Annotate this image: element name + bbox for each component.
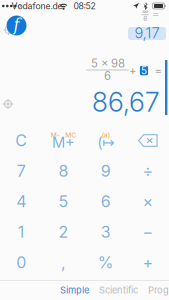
staticText: MC [65,131,76,139]
staticText: Vodafone.de [11,1,62,11]
staticText: 08:52 [73,1,95,11]
button[interactable]: 9 [84,156,127,186]
button[interactable]: 2 [42,217,84,247]
staticText: 6 [143,14,147,22]
staticText: 6 [101,192,111,211]
button[interactable]: + [127,247,169,278]
staticText: 3 [101,222,111,242]
button[interactable]: (a) [84,125,127,156]
button[interactable]: 7 [0,156,42,186]
staticText: 4 [16,192,26,211]
button[interactable]: % [84,247,127,278]
button[interactable]: Functions [6,15,26,35]
staticText: + [129,64,136,77]
staticText: = [154,64,161,77]
staticText: 7 [17,161,26,181]
button[interactable]: 8 [42,156,84,186]
button[interactable]: Prog [143,284,169,296]
button[interactable]: 6 [84,186,127,217]
staticText: 9 [101,161,111,181]
staticText: Simple [60,284,89,296]
staticText: ÷ [142,161,153,181]
button[interactable]: , [42,247,84,278]
staticText: % [98,253,114,272]
staticText: Prog [148,284,169,296]
button[interactable]: M- [42,125,84,156]
staticText: 5 [58,192,68,211]
button[interactable]: Scientific [94,284,143,296]
button[interactable]: 5 [42,186,84,217]
staticText: C [15,131,27,150]
staticText: 1 [18,222,25,242]
staticText: (↦ [97,134,114,151]
staticText: 9,17 [134,24,159,42]
staticText: 2 [58,222,68,242]
staticText: 8 [58,161,68,181]
staticText: M- [51,131,60,139]
staticText: 86,67 [92,86,160,118]
staticText: , [61,253,66,272]
staticText: 5 [141,65,147,77]
staticText: 6 [104,69,111,83]
staticText: (a) [102,131,110,139]
staticText: M+ [52,134,75,151]
button[interactable]: C [0,125,42,156]
button[interactable]: − [127,217,169,247]
staticText: ∞ [142,7,148,16]
staticText: Scientific [99,284,138,296]
button[interactable]: Simple [55,284,94,296]
button[interactable]: Delete [127,125,169,156]
staticText: − [142,222,153,242]
staticText: + [142,253,153,272]
button[interactable]: × [127,186,169,217]
button[interactable]: 1 [0,217,42,247]
staticText: f [13,16,19,34]
button[interactable]: ÷ [127,156,169,186]
staticText: 5 × 98 [91,57,125,70]
button[interactable]: 3 [84,217,127,247]
staticText: 0 [16,253,26,272]
button[interactable]: 4 [0,186,42,217]
staticText: × [142,192,153,211]
button[interactable]: 0 [0,247,42,278]
